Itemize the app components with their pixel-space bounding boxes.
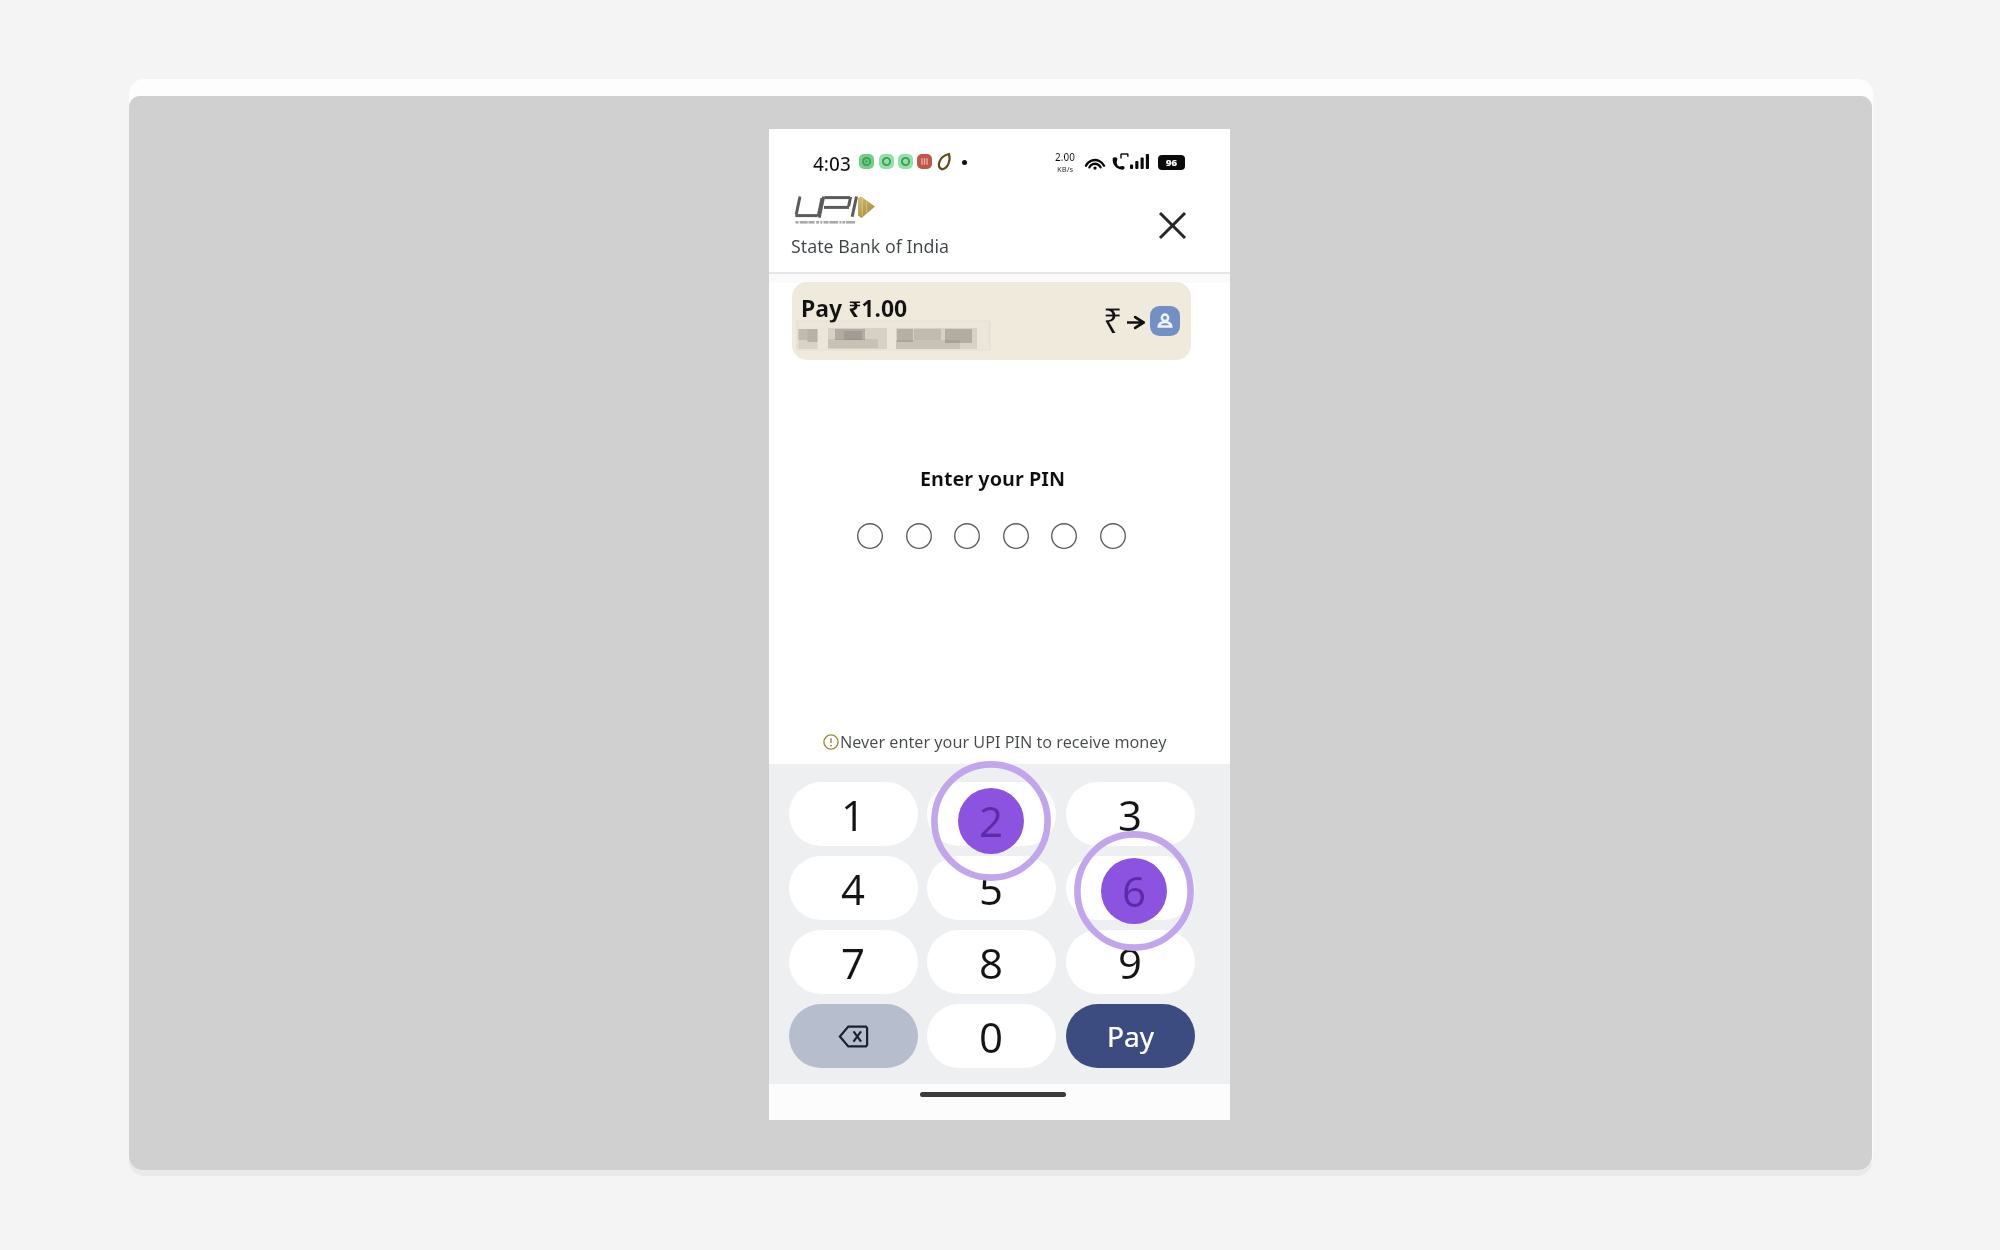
staticText: 4 [841, 860, 866, 917]
staticText: KB/s [1057, 164, 1074, 174]
button[interactable]: Close [1150, 203, 1194, 247]
staticText: 1 [841, 786, 866, 843]
staticText: 6 [1118, 860, 1143, 917]
staticText: 6 [1122, 862, 1147, 919]
button[interactable]: Backspace [789, 1004, 918, 1068]
button[interactable]: 6 [1066, 856, 1195, 920]
button[interactable]: 5 [927, 856, 1056, 920]
button[interactable]: 9 [1066, 930, 1195, 994]
staticText: 3 [1118, 786, 1143, 843]
staticText: 5 [979, 860, 1004, 917]
staticText: Never enter your UPI PIN to receive mone… [840, 731, 1167, 753]
button[interactable]: 4 [789, 856, 918, 920]
staticText: 2.00 [1055, 150, 1075, 164]
button[interactable]: Pay [1066, 1004, 1195, 1068]
button[interactable]: 2 [927, 782, 1056, 846]
button[interactable]: Pay ₹1.00 [792, 282, 1191, 360]
staticText: 0 [979, 1008, 1004, 1065]
staticText: 2 [979, 792, 1004, 849]
staticText: 9 [1118, 934, 1143, 991]
button[interactable]: 1 [789, 782, 918, 846]
button[interactable]: 0 [927, 1004, 1056, 1068]
staticText: Pay ₹1.00 [801, 292, 908, 323]
button[interactable]: 8 [927, 930, 1056, 994]
staticText: 96 [1166, 156, 1177, 169]
button[interactable]: 3 [1066, 782, 1195, 846]
staticText: Enter your PIN [920, 465, 1065, 492]
staticText: State Bank of India [791, 234, 950, 258]
button[interactable]: 7 [789, 930, 918, 994]
staticText: Pay [1107, 1017, 1154, 1055]
staticText: 7 [841, 934, 866, 991]
staticText: 2 [979, 786, 1004, 843]
staticText: ₹ [1103, 297, 1123, 343]
staticText: 8 [979, 934, 1004, 991]
staticText: 4:03 [813, 151, 851, 177]
